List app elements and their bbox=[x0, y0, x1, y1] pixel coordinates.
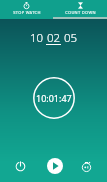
button[interactable]: COUNT DOWN bbox=[53, 0, 107, 19]
staticText: 02 bbox=[47, 30, 61, 46]
staticText: 05 bbox=[64, 30, 78, 46]
button[interactable]: Start bbox=[47, 158, 63, 174]
staticText: 10 bbox=[30, 30, 44, 46]
button[interactable]: Reset bbox=[10, 156, 31, 177]
staticText: COUNT DOWN bbox=[65, 10, 96, 15]
staticText: 10:01:47 bbox=[36, 92, 72, 104]
button[interactable]: Lap bbox=[76, 156, 97, 177]
button[interactable]: STOP WATCH bbox=[0, 0, 53, 19]
staticText: STOP WATCH bbox=[13, 10, 41, 15]
